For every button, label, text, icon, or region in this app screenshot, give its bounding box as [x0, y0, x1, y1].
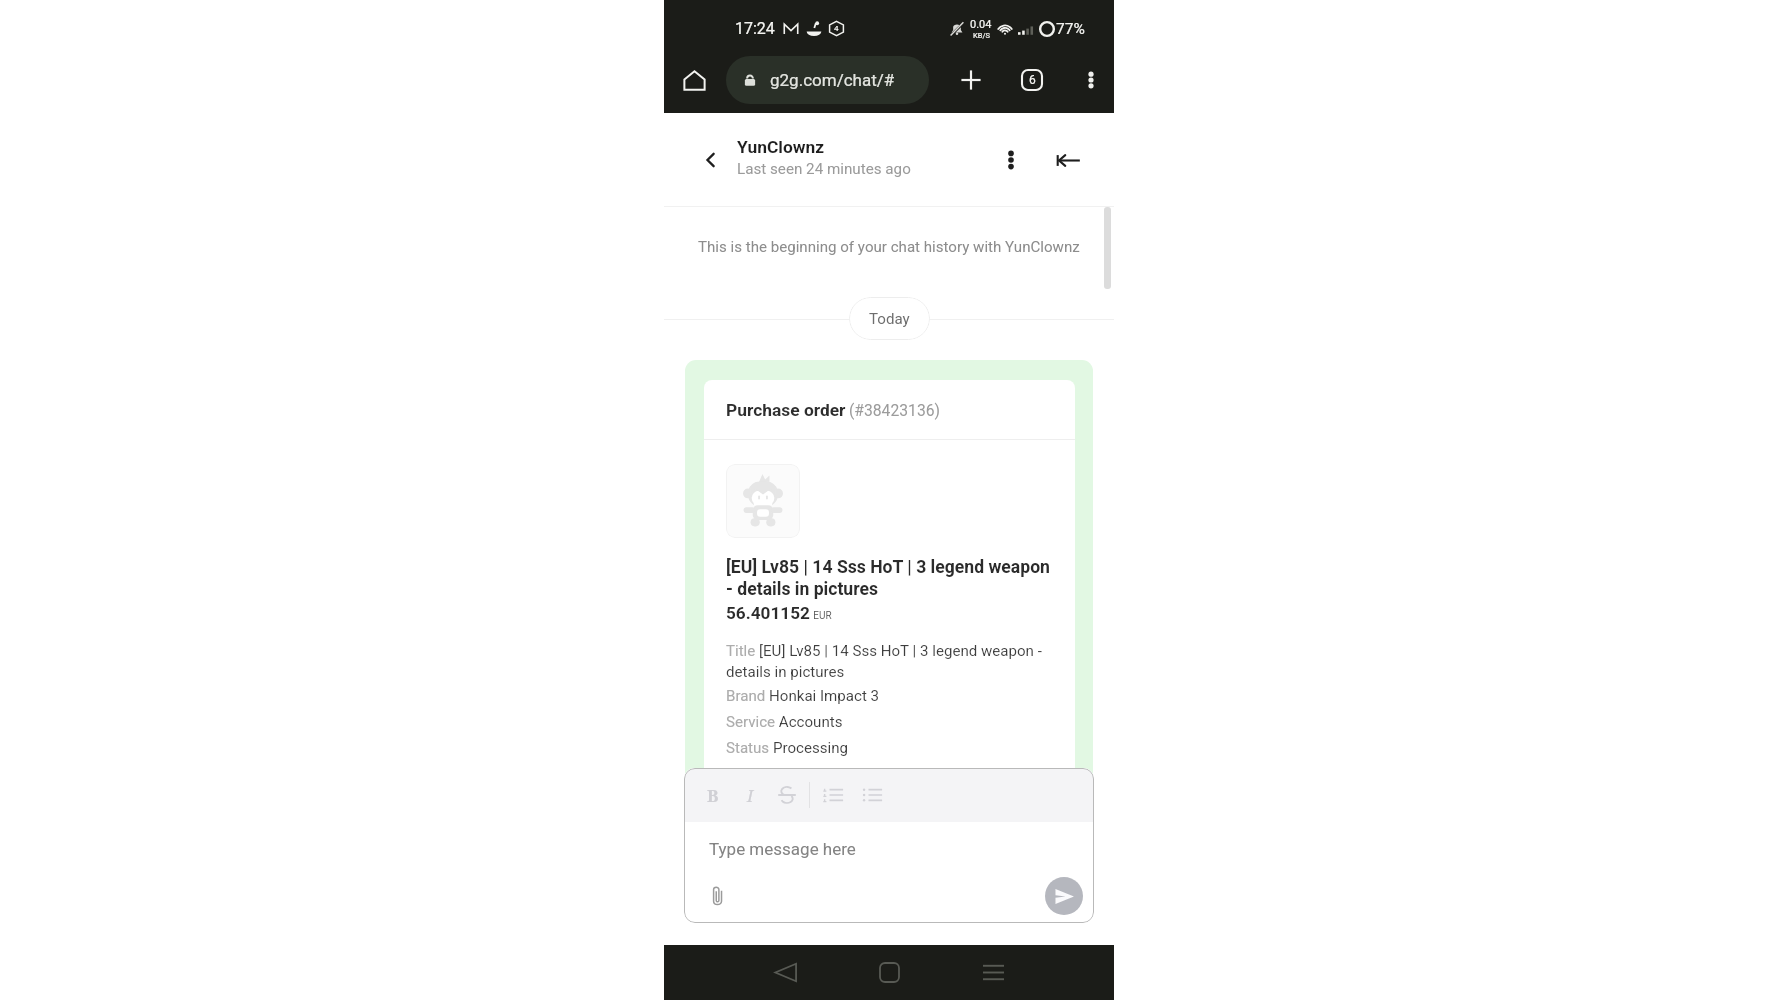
button[interactable]: Home [837, 945, 941, 1000]
staticText: Title [EU] Lv85 | 14 Sss HoT | 3 legend … [726, 642, 1057, 680]
staticText: 77% [1056, 20, 1085, 38]
button[interactable]: Back [733, 945, 837, 1000]
button[interactable]: Strikethrough [775, 783, 799, 807]
staticText: Status Processing [726, 739, 848, 757]
button[interactable]: g2g.com/chat/# [726, 56, 929, 104]
staticText: Today [869, 310, 910, 328]
staticText: 4 [834, 24, 839, 33]
staticText: 17:24 [735, 19, 775, 38]
button[interactable]: Numbered list [821, 783, 845, 807]
staticText: Last seen 24 minutes ago [737, 160, 911, 178]
staticText: [EU] Lv85 | 14 Sss HoT | 3 legend weapon… [726, 557, 1057, 599]
button[interactable]: Today [849, 297, 930, 340]
staticText: 56.401152 EUR [726, 603, 832, 623]
button[interactable]: I [738, 783, 762, 807]
button[interactable]: Tabs [1014, 62, 1050, 98]
button[interactable]: More options [1075, 64, 1107, 96]
staticText: Brand Honkai Impact 3 [726, 687, 880, 705]
button[interactable]: Collapse panel [1048, 140, 1088, 180]
button[interactable]: Back [692, 141, 730, 179]
button[interactable]: Home [678, 64, 710, 96]
staticText: Type message here [709, 839, 856, 859]
button[interactable]: Bulleted list [860, 783, 884, 807]
button[interactable]: More options [991, 140, 1031, 180]
staticText: 0.04 [970, 18, 992, 31]
button[interactable]: New tab [953, 62, 989, 98]
staticText: YunClownz [737, 137, 825, 157]
button[interactable]: Recent apps [941, 945, 1045, 1000]
staticText: KB/S [973, 31, 990, 40]
staticText: g2g.com/chat/# [770, 70, 895, 90]
staticText: Service Accounts [726, 713, 843, 731]
button[interactable]: Attach file [704, 882, 732, 910]
staticText: Purchase order (#38423136) [726, 400, 940, 420]
staticText: I [747, 784, 754, 807]
button[interactable]: Purchase order (#38423136) [685, 360, 1093, 790]
staticText: B [707, 784, 719, 807]
staticText: This is the beginning of your chat histo… [698, 238, 1080, 256]
staticText: 6 [1029, 73, 1036, 87]
button[interactable]: Send [1045, 877, 1083, 915]
button[interactable]: B [701, 783, 725, 807]
